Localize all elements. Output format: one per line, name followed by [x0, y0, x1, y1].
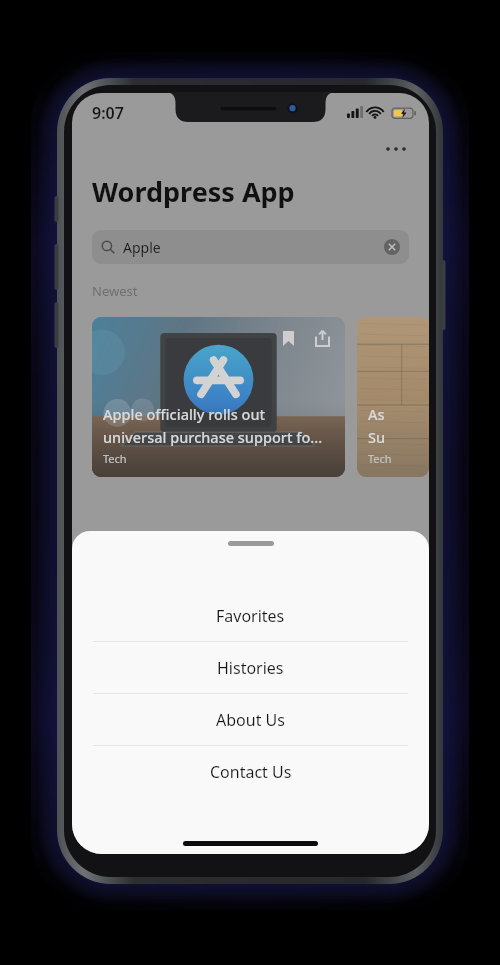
button[interactable]: Share	[311, 327, 333, 349]
button[interactable]: Bookmark	[92, 317, 345, 477]
staticText: Tech	[368, 451, 392, 466]
staticText: As	[368, 404, 385, 424]
staticText: universal purchase support fo...	[103, 427, 323, 447]
staticText: 9:07	[92, 102, 124, 124]
staticText: Su	[368, 427, 386, 447]
button[interactable]: About Us	[72, 694, 429, 745]
button[interactable]: Contact Us	[72, 746, 429, 797]
button[interactable]: Bookmark	[277, 327, 299, 349]
button[interactable]: More options	[381, 134, 411, 164]
button[interactable]: Apple	[92, 230, 409, 264]
staticText: Histories	[217, 657, 284, 679]
staticText: Tech	[103, 451, 127, 466]
button[interactable]: Histories	[72, 642, 429, 693]
button[interactable]: Favorites	[72, 590, 429, 641]
staticText: About Us	[216, 709, 285, 731]
staticText: Contact Us	[210, 761, 292, 783]
staticText: Wordpress App	[92, 173, 295, 210]
button[interactable]: Clear search	[384, 239, 400, 255]
button[interactable]: As	[357, 317, 429, 477]
staticText: Apple officially rolls out	[103, 404, 266, 424]
staticText: Newest	[92, 282, 138, 300]
staticText: Apple	[123, 238, 161, 257]
staticText: Favorites	[216, 605, 285, 627]
